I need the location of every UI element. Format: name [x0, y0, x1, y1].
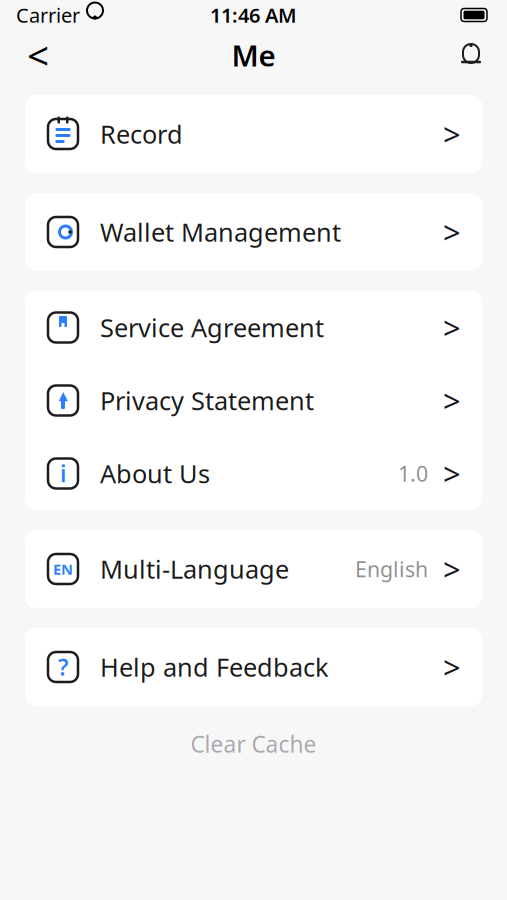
staticText: ?: [58, 652, 68, 682]
staticText: Multi-Language: [100, 552, 289, 586]
staticText: >: [443, 307, 461, 348]
staticText: >: [443, 647, 461, 687]
button[interactable]: Record: [25, 95, 482, 173]
staticText: Privacy Statement: [100, 384, 314, 417]
staticText: 11:46 AM: [210, 2, 297, 28]
staticText: <: [27, 29, 49, 81]
staticText: >: [443, 453, 461, 494]
staticText: i: [60, 458, 66, 488]
staticText: >: [443, 212, 461, 252]
button[interactable]: Service Agreement: [25, 291, 482, 364]
button[interactable]: ▲: [25, 364, 482, 437]
button[interactable]: i: [25, 437, 482, 510]
staticText: English: [355, 555, 428, 583]
staticText: 1.0: [398, 459, 428, 488]
staticText: Service Agreement: [100, 311, 324, 344]
staticText: Carrier: [16, 2, 80, 28]
staticText: EN: [53, 559, 73, 579]
staticText: Help and Feedback: [100, 650, 329, 684]
button[interactable]: ?: [25, 628, 482, 706]
staticText: Record: [100, 117, 183, 151]
button[interactable]: Notifications: [449, 33, 493, 77]
button[interactable]: Clear Cache: [0, 722, 507, 766]
staticText: Wallet Management: [100, 215, 341, 249]
button[interactable]: Wallet Management: [25, 193, 482, 271]
button[interactable]: EN: [25, 530, 482, 608]
staticText: >: [443, 549, 461, 589]
staticText: >: [443, 380, 461, 421]
staticText: Me: [231, 35, 275, 74]
staticText: ▲: [58, 389, 67, 402]
staticText: >: [443, 114, 461, 154]
staticText: Clear Cache: [190, 729, 316, 759]
button[interactable]: Back: [16, 33, 60, 77]
staticText: About Us: [100, 457, 210, 490]
